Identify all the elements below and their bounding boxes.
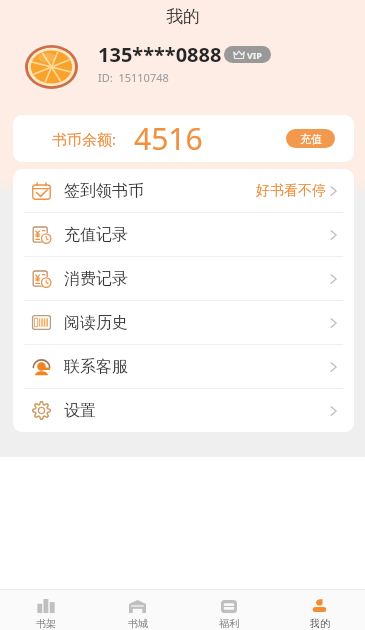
staticText: 充值记录 (64, 225, 128, 245)
staticText: 135****0888 (98, 41, 222, 68)
staticText: 签到领书币 (64, 181, 144, 201)
staticText: 我的 (166, 6, 200, 27)
button[interactable]: 福利 (183, 590, 274, 630)
staticText: 书城 (128, 617, 148, 630)
staticText: 书币余额: (52, 129, 117, 149)
button[interactable]: 书城 (92, 590, 183, 630)
staticText: 书架 (36, 617, 56, 630)
staticText: 我的 (310, 617, 330, 630)
staticText: 消费记录 (64, 269, 128, 289)
staticText: 福利 (219, 617, 239, 630)
staticText: 设置 (64, 401, 96, 421)
button[interactable]: VIP (224, 46, 271, 63)
button[interactable]: 设置 (13, 389, 354, 432)
staticText: 联系客服 (64, 357, 128, 377)
staticText: 阅读历史 (64, 313, 128, 333)
button[interactable]: 书架 (0, 590, 92, 630)
button[interactable]: 充值 (286, 129, 335, 148)
button[interactable]: 充值记录 (13, 213, 354, 256)
staticText: 4516 (134, 118, 203, 159)
staticText: VIP (247, 49, 262, 61)
staticText: 充值 (300, 132, 322, 146)
button[interactable]: 消费记录 (13, 257, 354, 300)
staticText: 好书看不停 (256, 182, 326, 200)
button[interactable]: 签到领书币 (13, 169, 354, 212)
staticText: ID: 15110748 (98, 70, 169, 85)
button[interactable]: 联系客服 (13, 345, 354, 388)
button[interactable]: 阅读历史 (13, 301, 354, 344)
button[interactable]: 我的 (274, 590, 365, 630)
